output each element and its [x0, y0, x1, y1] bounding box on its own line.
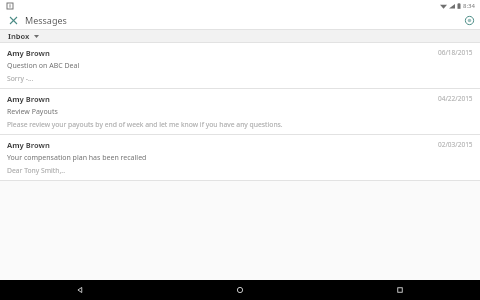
staticText: Question on ABC Deal: [7, 61, 80, 71]
staticText: Amy Brown: [7, 94, 50, 104]
button[interactable]: Back: [0, 286, 160, 294]
staticText: Inbox: [8, 31, 30, 41]
button[interactable]: Compose message: [459, 14, 480, 27]
button[interactable]: Close: [0, 12, 75, 28]
button[interactable]: Home: [160, 286, 320, 294]
staticText: Review Payouts: [7, 107, 58, 117]
staticText: 02/03/2015: [438, 140, 473, 149]
staticText: 8:34: [463, 2, 475, 10]
other: Close: [8, 15, 18, 25]
staticText: Dear Tony Smith,..: [7, 166, 65, 175]
staticText: Amy Brown: [7, 140, 50, 150]
button[interactable]: Recent apps: [320, 286, 480, 294]
staticText: Sorry -...: [7, 74, 34, 83]
staticText: Messages: [25, 14, 67, 26]
button[interactable]: Amy Brown: [0, 135, 480, 180]
staticText: Please review your payouts by end of wee…: [7, 120, 283, 129]
button[interactable]: Amy Brown: [0, 89, 480, 134]
button[interactable]: Amy Brown: [0, 43, 480, 88]
staticText: Amy Brown: [7, 48, 50, 58]
staticText: 06/18/2015: [438, 48, 473, 57]
staticText: 04/22/2015: [438, 94, 473, 103]
staticText: Your compensation plan has been recalled: [7, 153, 147, 163]
button[interactable]: Inbox: [0, 30, 480, 42]
